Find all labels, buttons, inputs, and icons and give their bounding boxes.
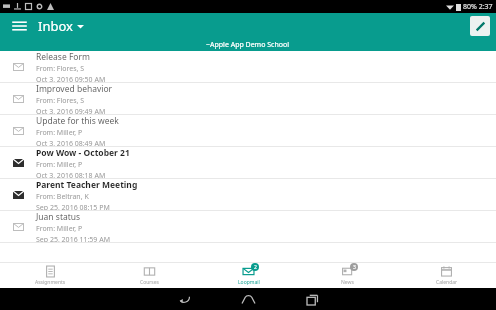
staticText: News xyxy=(341,279,354,286)
staticText: From: Flores, S xyxy=(36,64,85,74)
staticText: 3 xyxy=(353,264,356,271)
staticText: Oct 3, 2016 09:49 AM xyxy=(36,107,106,114)
button[interactable]: Open navigation drawer xyxy=(8,15,30,37)
button[interactable]: Home xyxy=(231,288,265,310)
staticText: Oct 3, 2016 09:50 AM xyxy=(36,75,106,82)
staticText: Oct 3, 2016 08:18 AM xyxy=(36,171,106,178)
staticText: Assignments xyxy=(35,279,66,286)
staticText: Release Form xyxy=(36,51,90,63)
button[interactable]: Parent Teacher Meeting xyxy=(0,179,496,211)
staticText: Loopmail xyxy=(238,279,260,286)
button[interactable]: Inbox xyxy=(38,17,84,35)
button[interactable]: Back xyxy=(167,288,201,310)
staticText: From: Flores, S xyxy=(36,96,85,106)
button[interactable]: Assignments xyxy=(0,262,100,288)
button[interactable]: Compose message xyxy=(470,16,490,36)
staticText: Courses xyxy=(140,279,159,286)
staticText: From: Miller, P xyxy=(36,128,83,138)
staticText: 80% 2:37 xyxy=(463,2,493,12)
staticText: Improved behavior xyxy=(36,83,113,95)
staticText: Oct 3, 2016 08:49 AM xyxy=(36,139,106,146)
button[interactable]: 2 xyxy=(199,262,298,288)
button[interactable]: Release Form xyxy=(0,51,496,83)
staticText: From: Beltran, K xyxy=(36,192,89,202)
staticText: Pow Wow - October 21 xyxy=(36,147,130,159)
button[interactable]: Juan status xyxy=(0,211,496,243)
staticText: Juan status xyxy=(36,211,81,223)
button[interactable]: Recent apps xyxy=(295,288,329,310)
button[interactable]: Calendar xyxy=(397,262,496,288)
staticText: Inbox xyxy=(38,17,73,35)
button[interactable]: Update for this week xyxy=(0,115,496,147)
button[interactable]: Improved behavior xyxy=(0,83,496,115)
button[interactable]: 3 xyxy=(298,262,397,288)
staticText: Sep 25, 2016 11:59 AM xyxy=(36,235,110,242)
staticText: Calendar xyxy=(436,279,458,286)
button[interactable]: Pow Wow - October 21 xyxy=(0,147,496,179)
staticText: From: Miller, P xyxy=(36,224,83,234)
staticText: Parent Teacher Meeting xyxy=(36,179,138,191)
staticText: 2 xyxy=(254,264,257,271)
staticText: ~Apple App Demo School xyxy=(206,40,290,50)
staticText: Update for this week xyxy=(36,115,119,127)
staticText: Sep 25, 2016 08:15 PM xyxy=(36,203,110,210)
staticText: From: Miller, P xyxy=(36,160,83,170)
button[interactable]: Courses xyxy=(100,262,199,288)
